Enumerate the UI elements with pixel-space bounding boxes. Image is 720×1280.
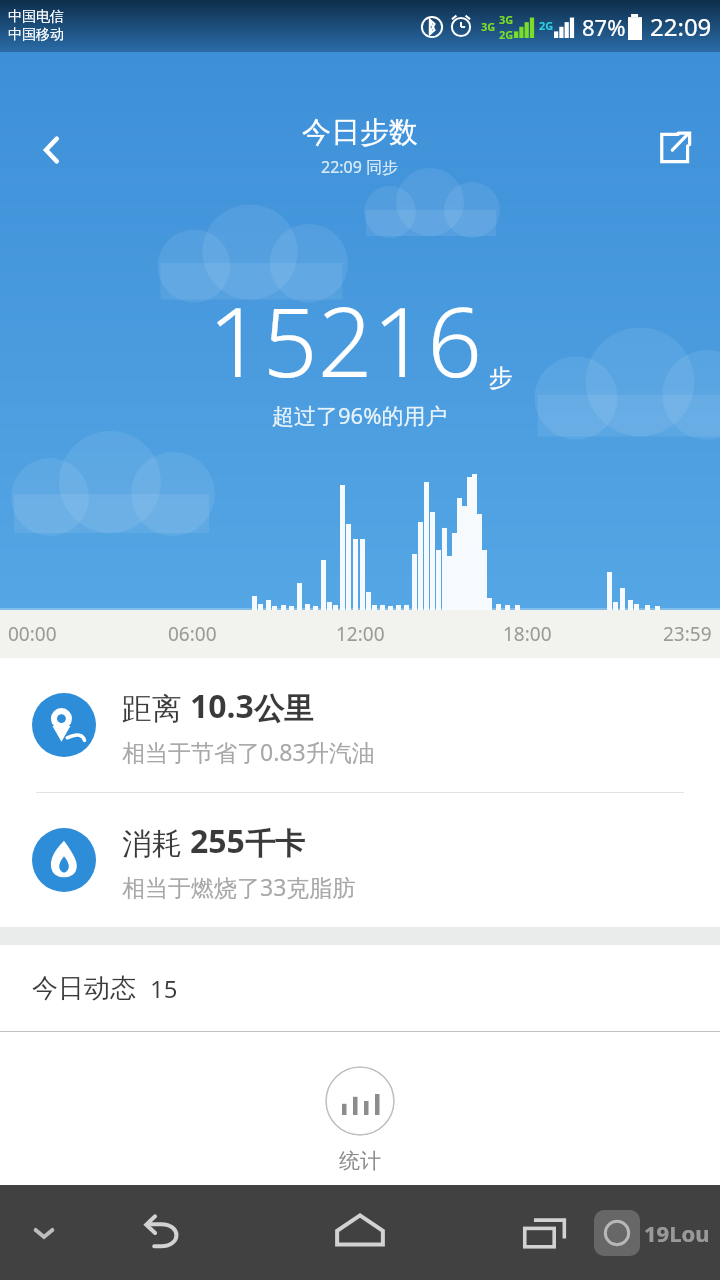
staticText: 255 [190,819,245,863]
staticText: 22:09 同步 [321,156,399,178]
button[interactable]: Distance [0,658,720,792]
staticText: 15216 [208,274,483,405]
staticText: 今日动态 [32,972,136,1005]
staticText: 步 [489,363,513,393]
button[interactable]: Home [320,1193,400,1273]
staticText: 今日步数 [302,114,418,151]
button[interactable]: 统计 [0,1066,720,1174]
staticText: 公里 [254,690,314,728]
staticText: 87% [582,12,626,42]
staticText: 超过了96%的用户 [272,400,448,430]
staticText: 千卡 [245,825,305,863]
button[interactable]: Back [128,1198,198,1268]
staticText: 12:00 [336,621,385,647]
staticText: 18:00 [503,621,552,647]
staticText: 统计 [339,1148,381,1174]
button[interactable]: 今日动态 [0,945,720,1031]
staticText: 3G [481,19,496,34]
button[interactable]: Calories [0,793,720,927]
staticText: 中国电信 [8,8,64,26]
other: Distance [32,693,96,757]
staticText: 2G [499,27,514,42]
staticText: 22:09 [650,10,712,43]
staticText: 23:59 [663,621,712,647]
staticText: 06:00 [168,621,217,647]
staticText: 15 [150,972,178,1005]
staticText: 2G [539,18,554,33]
staticText: 19Lou [644,1218,710,1248]
staticText: 10.3 [190,684,254,728]
other: Calories [32,828,96,892]
staticText: 相当于节省了0.83升汽油 [122,736,375,767]
staticText: 中国移动 [8,26,64,44]
staticText: 3G [499,12,514,27]
button[interactable]: Hide [18,1207,70,1259]
staticText: 00:00 [8,621,57,647]
button[interactable]: Recents [510,1198,580,1268]
staticText: 消耗 [122,822,190,863]
staticText: 相当于燃烧了33克脂肪 [122,871,356,902]
button[interactable]: Back [22,120,82,180]
button[interactable]: Share [646,120,702,176]
staticText: 距离 [122,687,190,728]
